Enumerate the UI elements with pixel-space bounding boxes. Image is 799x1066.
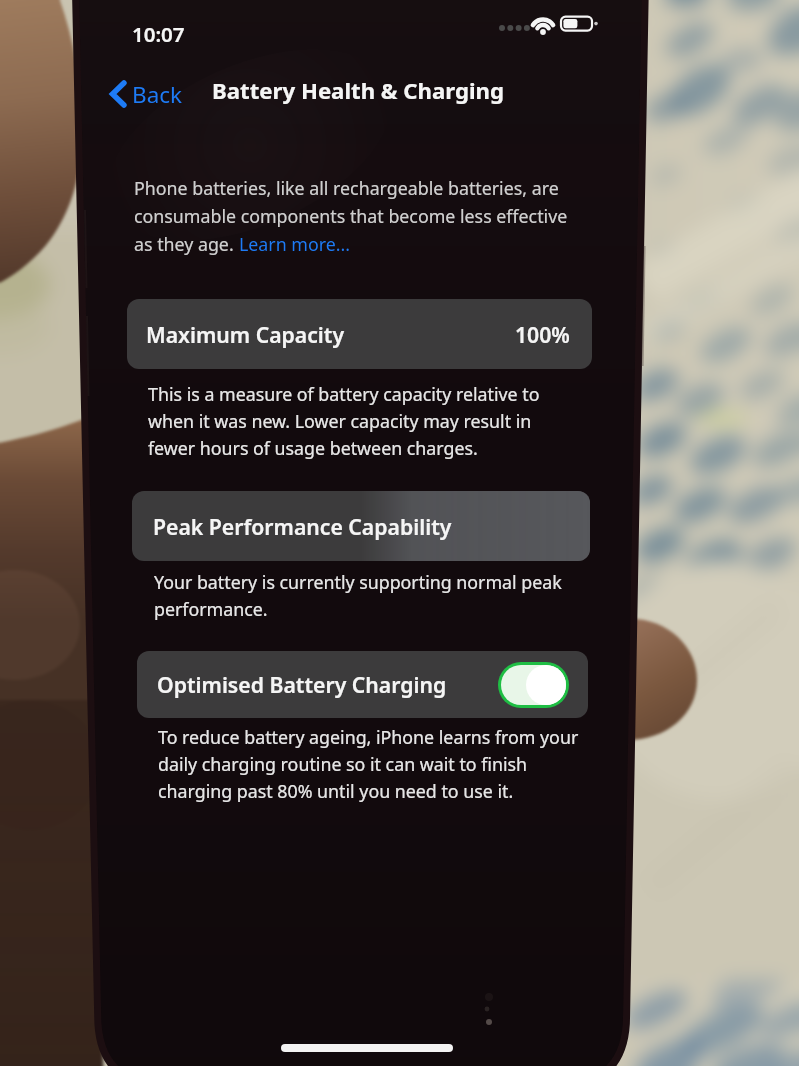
staticText: Maximum Capacity bbox=[146, 320, 345, 349]
staticText: 10:07 bbox=[132, 20, 185, 48]
staticText: daily charging routine so it can wait to… bbox=[158, 752, 528, 776]
staticText: when it was new. Lower capacity may resu… bbox=[148, 409, 532, 433]
staticText: This is a measure of battery capacity re… bbox=[148, 382, 540, 406]
staticText: Back bbox=[132, 79, 183, 110]
staticText: Phone batteries, like all rechargeable b… bbox=[134, 176, 559, 200]
staticText: Optimised Battery Charging bbox=[157, 670, 447, 699]
button[interactable]: Learn more... bbox=[239, 232, 351, 256]
staticText: To reduce battery ageing, iPhone learns … bbox=[158, 725, 579, 749]
staticText: Peak Performance Capability bbox=[153, 512, 452, 541]
staticText: charging past 80% until you need to use … bbox=[158, 779, 514, 803]
button[interactable]: Peak Performance Capability bbox=[132, 491, 590, 561]
staticText: performance. bbox=[154, 597, 268, 621]
button[interactable]: Optimised Battery Charging toggle bbox=[498, 662, 569, 708]
staticText: as they age. bbox=[134, 232, 239, 256]
staticText: Your battery is currently supporting nor… bbox=[154, 570, 562, 594]
staticText: Battery Health & Charging bbox=[212, 75, 505, 105]
button[interactable]: Optimised Battery Charging bbox=[137, 651, 588, 718]
staticText: 100% bbox=[515, 320, 570, 349]
staticText: consumable components that become less e… bbox=[134, 204, 568, 228]
button[interactable]: Back bbox=[104, 72, 189, 116]
staticText: fewer hours of usage between charges. bbox=[148, 436, 478, 460]
button[interactable]: Maximum Capacity bbox=[127, 299, 592, 369]
